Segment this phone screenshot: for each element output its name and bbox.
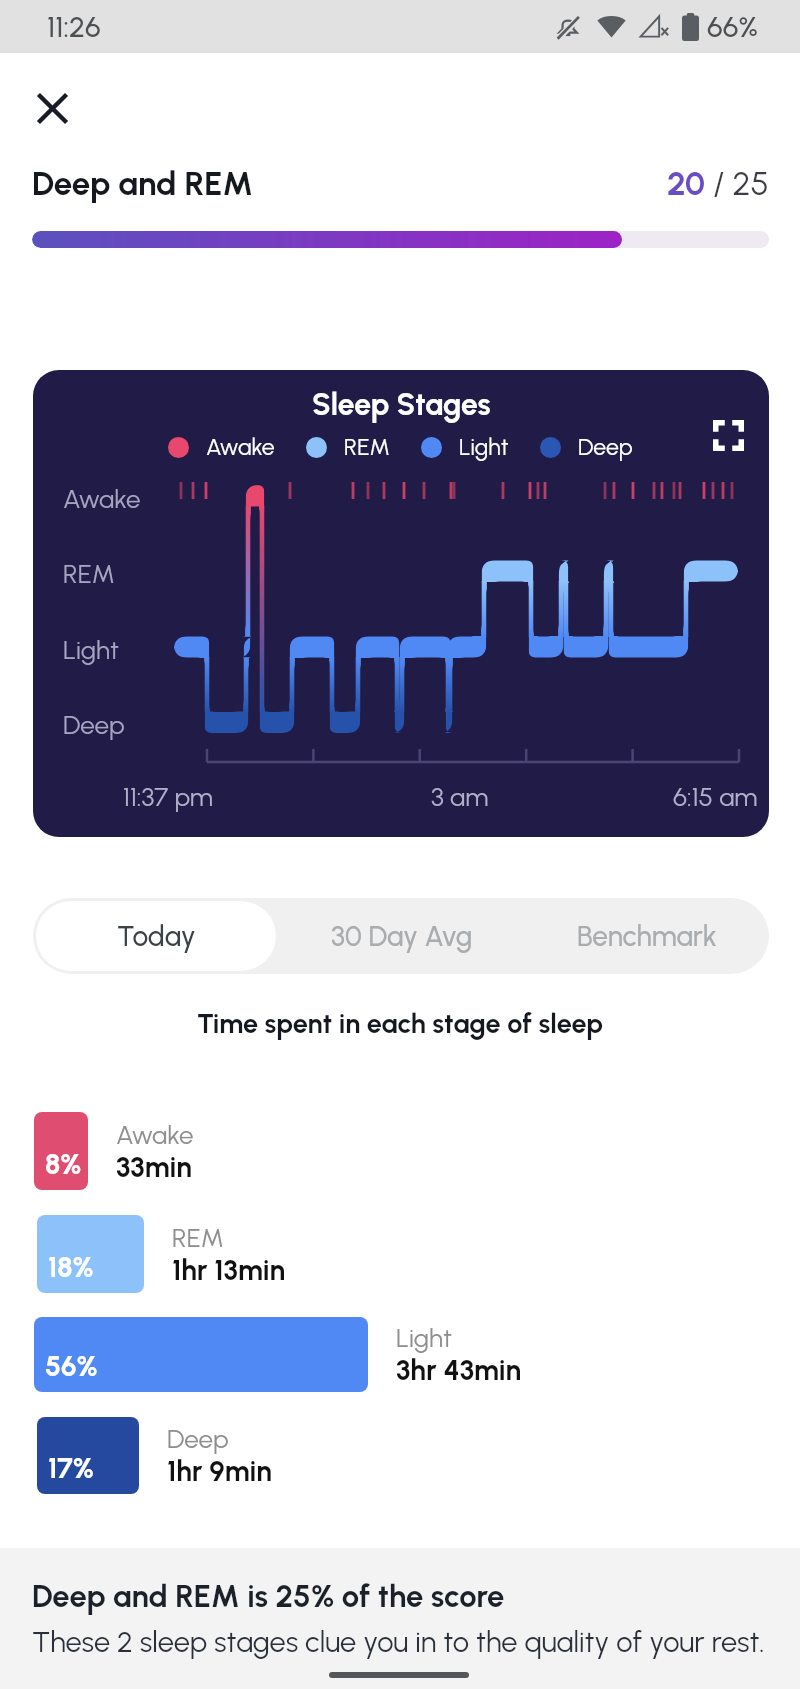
staticText: 17%	[48, 1451, 94, 1485]
button[interactable]: Expand chart	[705, 412, 751, 458]
staticText: Awake	[63, 483, 141, 514]
staticText: 6:15 am	[673, 781, 758, 812]
staticText: These 2 sleep stages clue you in to the …	[32, 1624, 765, 1659]
staticText: 18%	[48, 1250, 94, 1284]
staticText: Deep	[167, 1423, 229, 1454]
staticText: REM	[172, 1222, 224, 1253]
staticText: 3hr 43min	[396, 1353, 522, 1387]
button[interactable]: Today	[36, 901, 276, 971]
staticText: 66%	[707, 9, 758, 44]
staticText: REM	[63, 558, 115, 589]
staticText: Light	[396, 1322, 453, 1353]
staticText: Awake	[116, 1119, 194, 1150]
staticText: Light	[459, 433, 509, 461]
staticText: 56%	[45, 1349, 98, 1383]
staticText: / 25	[705, 164, 769, 204]
staticText: REM	[344, 433, 390, 461]
staticText: Time spent in each stage of sleep	[0, 1007, 800, 1039]
staticText: Deep and REM	[32, 164, 254, 204]
staticText: 30 Day Avg	[331, 919, 473, 953]
staticText: Sleep Stages	[312, 386, 491, 422]
staticText: Light	[63, 634, 120, 665]
button[interactable]: 30 Day Avg	[279, 898, 524, 974]
staticText: Benchmark	[577, 919, 717, 953]
staticText: 20	[667, 164, 705, 204]
staticText: 3 am	[431, 781, 489, 812]
staticText: 1hr 9min	[167, 1454, 272, 1488]
staticText: Deep	[63, 709, 125, 740]
staticText: 11:26	[47, 9, 101, 44]
staticText: Deep and REM is 25% of the score	[32, 1578, 505, 1615]
staticText: Today	[117, 919, 196, 953]
staticText: 8%	[45, 1147, 82, 1181]
button[interactable]: Close	[26, 82, 78, 134]
staticText: Deep	[578, 433, 633, 461]
staticText: 33min	[116, 1150, 192, 1184]
staticText: 11:37 pm	[123, 781, 213, 812]
staticText: Awake	[206, 433, 275, 461]
staticText: 1hr 13min	[172, 1253, 286, 1287]
button[interactable]: Benchmark	[524, 898, 769, 974]
